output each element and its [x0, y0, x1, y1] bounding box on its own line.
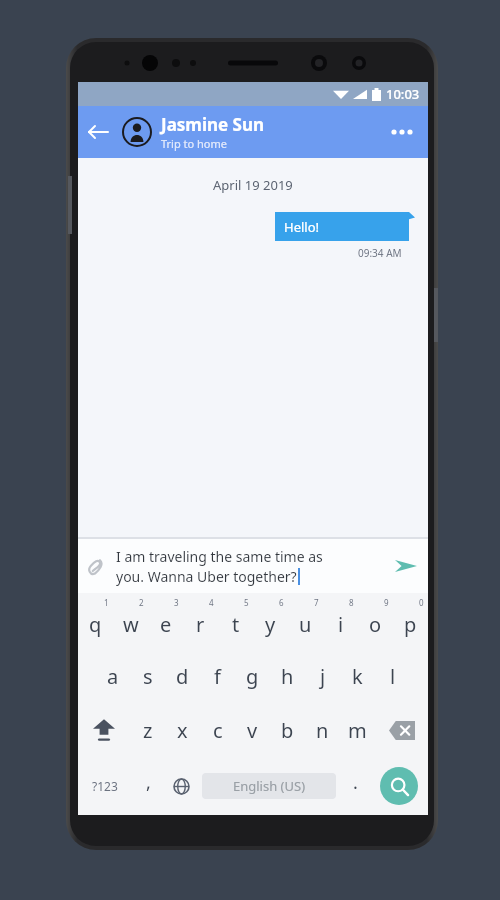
- staticText: p: [404, 611, 417, 638]
- button[interactable]: s: [130, 649, 165, 703]
- staticText: a: [107, 663, 119, 690]
- button[interactable]: x: [165, 703, 200, 757]
- button[interactable]: Send: [384, 544, 428, 588]
- button[interactable]: n: [305, 703, 340, 757]
- button[interactable]: g: [235, 649, 270, 703]
- button[interactable]: Backspace: [375, 703, 428, 757]
- staticText: d: [176, 663, 189, 690]
- staticText: 2: [139, 597, 144, 608]
- staticText: you. Wanna Uber together?: [116, 567, 297, 586]
- staticText: g: [246, 663, 259, 690]
- staticText: 5: [244, 597, 249, 608]
- staticText: e: [160, 611, 172, 638]
- staticText: Jasmine Sun: [161, 113, 265, 136]
- button[interactable]: ,: [132, 757, 164, 815]
- staticText: 4: [209, 597, 214, 608]
- button[interactable]: 5: [218, 593, 253, 649]
- button[interactable]: k: [340, 649, 375, 703]
- button[interactable]: Search: [370, 757, 428, 815]
- staticText: k: [352, 663, 363, 690]
- button[interactable]: a: [95, 649, 130, 703]
- button[interactable]: 0: [393, 593, 428, 649]
- button[interactable]: Hello!: [275, 212, 415, 241]
- staticText: Hello!: [284, 218, 320, 236]
- staticText: English (US): [233, 777, 306, 795]
- staticText: Trip to home: [161, 136, 227, 151]
- button[interactable]: j: [305, 649, 340, 703]
- button[interactable]: h: [270, 649, 305, 703]
- staticText: j: [320, 663, 326, 690]
- staticText: 09:34 AM: [358, 246, 402, 260]
- button[interactable]: Attach file: [78, 548, 114, 584]
- button[interactable]: Shift: [78, 703, 130, 757]
- staticText: ,: [146, 770, 151, 795]
- staticText: 0: [419, 597, 424, 608]
- staticText: u: [299, 611, 312, 638]
- button[interactable]: 3: [148, 593, 183, 649]
- staticText: 6: [279, 597, 284, 608]
- staticText: 9: [384, 597, 389, 608]
- button[interactable]: English (US): [202, 773, 336, 799]
- button[interactable]: 7: [288, 593, 323, 649]
- staticText: 1: [104, 597, 109, 608]
- button[interactable]: More options: [380, 110, 424, 154]
- staticText: b: [281, 717, 294, 744]
- button[interactable]: f: [200, 649, 235, 703]
- button[interactable]: 6: [253, 593, 288, 649]
- button[interactable]: 4: [183, 593, 218, 649]
- staticText: h: [281, 663, 294, 690]
- staticText: 10:03: [386, 85, 420, 103]
- staticText: s: [143, 663, 153, 690]
- staticText: ?123: [92, 778, 118, 794]
- button[interactable]: d: [165, 649, 200, 703]
- button[interactable]: v: [235, 703, 270, 757]
- button[interactable]: b: [270, 703, 305, 757]
- staticText: 3: [174, 597, 179, 608]
- staticText: o: [369, 611, 382, 638]
- button[interactable]: ?123: [78, 757, 132, 815]
- staticText: I am traveling the same time as: [116, 547, 323, 566]
- staticText: t: [232, 611, 240, 638]
- staticText: x: [177, 717, 188, 744]
- staticText: i: [338, 611, 344, 638]
- staticText: 8: [349, 597, 354, 608]
- button[interactable]: Change language: [164, 757, 198, 815]
- staticText: f: [214, 663, 221, 690]
- staticText: q: [89, 611, 102, 638]
- button[interactable]: .: [340, 757, 370, 815]
- staticText: w: [123, 611, 139, 638]
- staticText: r: [196, 611, 205, 638]
- staticText: c: [213, 717, 223, 744]
- staticText: .: [353, 770, 358, 795]
- button[interactable]: 8: [323, 593, 358, 649]
- staticText: 7: [314, 597, 319, 608]
- button[interactable]: 1: [78, 593, 113, 649]
- staticText: n: [316, 717, 329, 744]
- button[interactable]: 9: [358, 593, 393, 649]
- button[interactable]: m: [340, 703, 375, 757]
- button[interactable]: Back: [78, 112, 118, 152]
- button[interactable]: c: [200, 703, 235, 757]
- button[interactable]: 2: [113, 593, 148, 649]
- button[interactable]: z: [130, 703, 165, 757]
- staticText: z: [143, 717, 153, 744]
- staticText: April 19 2019: [213, 176, 293, 194]
- staticText: v: [247, 717, 258, 744]
- button[interactable]: l: [375, 649, 410, 703]
- staticText: m: [348, 717, 367, 744]
- staticText: l: [390, 663, 396, 690]
- staticText: y: [265, 611, 276, 638]
